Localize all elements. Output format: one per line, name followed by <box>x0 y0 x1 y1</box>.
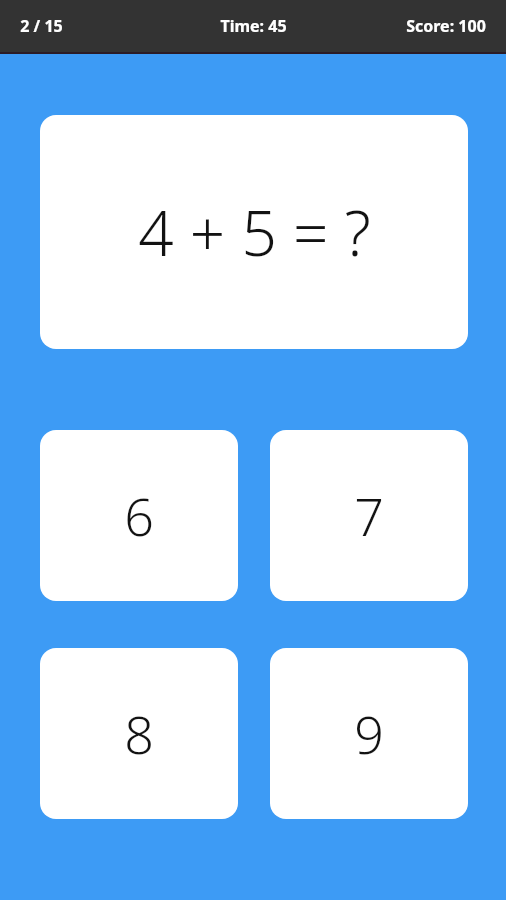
button[interactable]: 4 + 5 = ? <box>40 115 468 349</box>
staticText: 9 <box>354 698 384 769</box>
staticText: 7 <box>354 480 384 551</box>
button[interactable]: 9 <box>270 648 468 819</box>
staticText: 4 + 5 = ? <box>138 190 371 274</box>
staticText: 2 / 15 <box>20 15 63 37</box>
button[interactable]: 8 <box>40 648 238 819</box>
staticText: 8 <box>124 698 154 769</box>
staticText: Time: 45 <box>220 15 287 37</box>
staticText: 6 <box>124 480 154 551</box>
staticText: Score: 100 <box>406 15 486 37</box>
button[interactable]: 7 <box>270 430 468 601</box>
button[interactable]: 6 <box>40 430 238 601</box>
